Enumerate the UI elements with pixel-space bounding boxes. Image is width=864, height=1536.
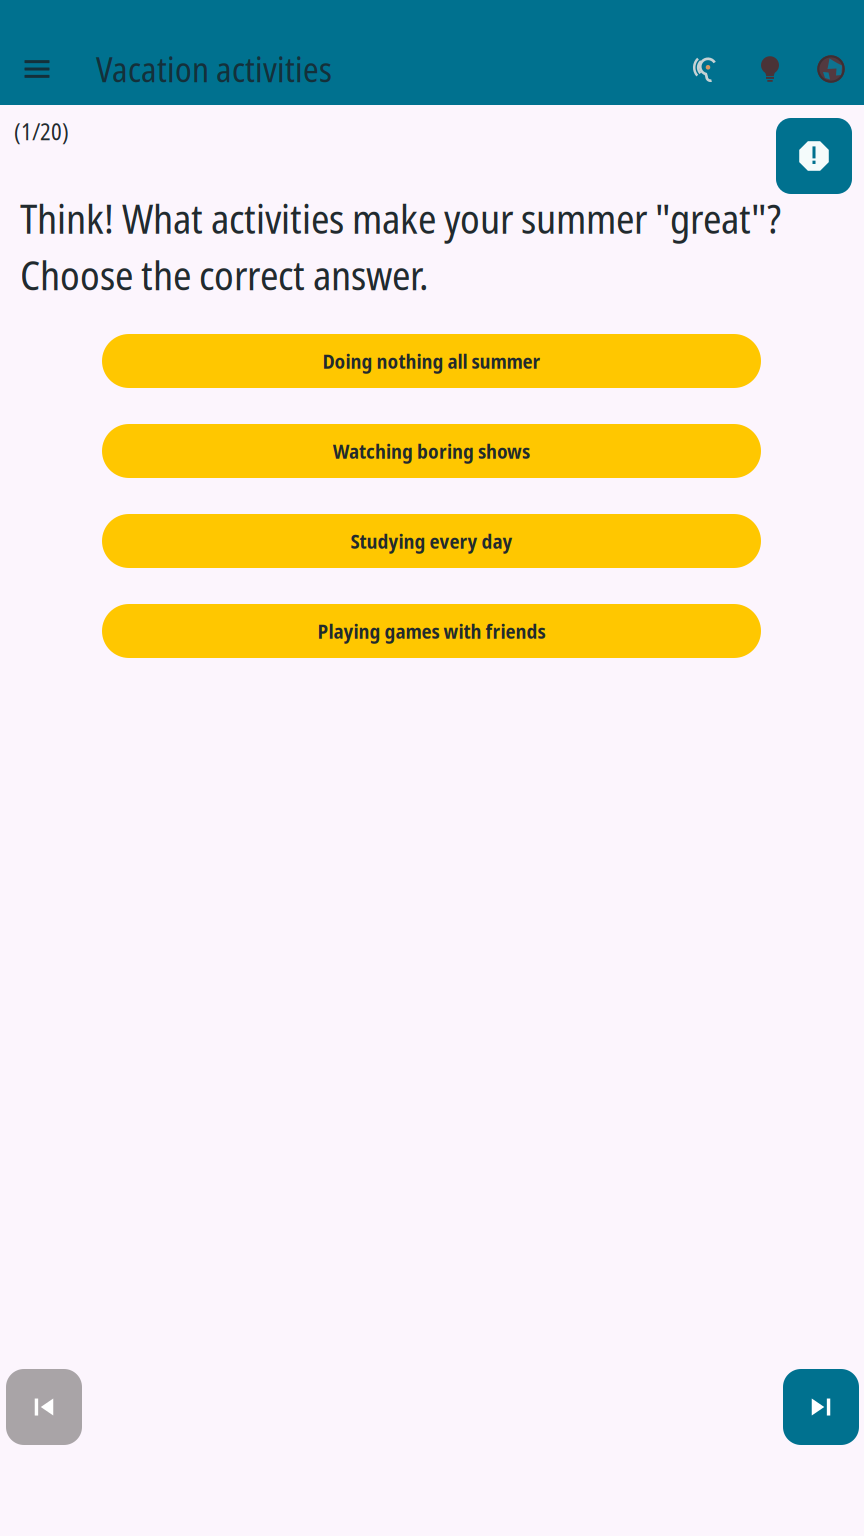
button[interactable]: Listen bbox=[683, 47, 727, 91]
staticText: Watching boring shows bbox=[333, 437, 530, 465]
staticText: Doing nothing all summer bbox=[322, 347, 540, 375]
button[interactable]: Watching boring shows bbox=[102, 424, 761, 478]
staticText: Vacation activities bbox=[96, 46, 332, 92]
staticText: (1/20) bbox=[14, 116, 69, 147]
staticText: Think! What activities make your summer … bbox=[20, 191, 781, 302]
button[interactable]: Report a problem bbox=[776, 118, 852, 194]
button[interactable]: Hint bbox=[748, 47, 792, 91]
button[interactable]: Previous bbox=[6, 1369, 82, 1445]
button[interactable]: Doing nothing all summer bbox=[102, 334, 761, 388]
button[interactable]: Menu bbox=[15, 47, 59, 91]
button[interactable]: Next bbox=[783, 1369, 859, 1445]
button[interactable]: Translate bbox=[809, 47, 853, 91]
staticText: Playing games with friends bbox=[317, 617, 545, 645]
staticText: Studying every day bbox=[350, 527, 512, 555]
button[interactable]: Playing games with friends bbox=[102, 604, 761, 658]
button[interactable]: Studying every day bbox=[102, 514, 761, 568]
